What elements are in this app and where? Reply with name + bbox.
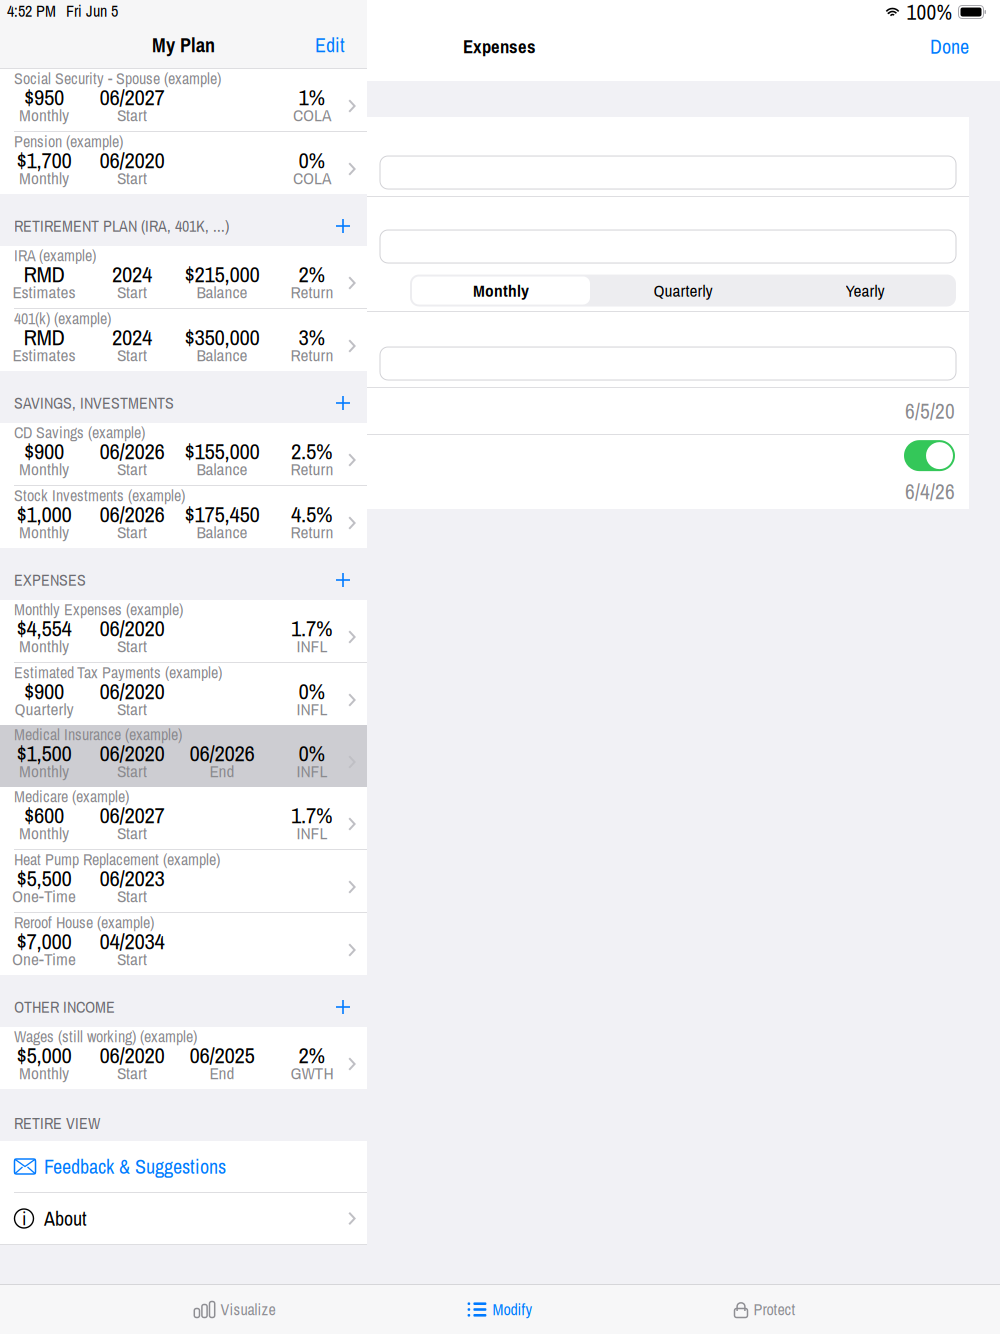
button[interactable]: Visualize — [102, 1285, 367, 1334]
staticText: Modify — [492, 1299, 532, 1320]
staticText: OTHER INCOME — [14, 996, 115, 1018]
button[interactable]: Add item to OTHER INCOME — [327, 994, 359, 1020]
staticText: Done — [930, 33, 969, 60]
staticText: Edit — [315, 31, 345, 58]
button[interactable]: Add item to EXPENSES — [327, 567, 359, 593]
staticText: One-Time — [12, 947, 76, 971]
staticText: Monthly — [19, 520, 69, 544]
button[interactable]: Stock Investments (example) — [0, 486, 367, 548]
staticText: $1,000 — [16, 499, 71, 529]
button[interactable]: Social Security - Spouse (example) — [0, 69, 367, 131]
staticText: INFL — [296, 697, 327, 721]
staticText: $5,500 — [16, 863, 71, 893]
button[interactable]: Done — [920, 24, 979, 69]
button[interactable]: Modify — [367, 1285, 632, 1334]
staticText: Monthly — [19, 103, 69, 127]
staticText: 06/2026 — [99, 436, 164, 466]
staticText: 2024 — [112, 322, 152, 352]
button[interactable]: Yearly — [774, 274, 956, 306]
staticText: COLA — [293, 166, 331, 190]
staticText: Reroof House (example) — [14, 912, 154, 933]
staticText: Quarterly — [653, 279, 712, 302]
staticText: Monthly — [473, 279, 529, 302]
staticText: 2% — [298, 1040, 325, 1070]
staticText: 3% — [298, 322, 325, 352]
staticText: $1,700 — [16, 145, 71, 175]
staticText: EXPENSES — [14, 569, 86, 591]
staticText: Fri Jun 5 — [66, 0, 118, 22]
staticText: i — [22, 1207, 26, 1230]
staticText: 1.7% — [291, 800, 333, 830]
staticText: Monthly — [19, 166, 69, 190]
staticText: 0% — [298, 145, 325, 175]
button[interactable]: i — [0, 1193, 367, 1244]
staticText: Visualize — [220, 1299, 275, 1320]
staticText: Return — [290, 343, 333, 367]
staticText: 06/2026 — [99, 499, 164, 529]
staticText: $7,000 — [16, 926, 71, 956]
button[interactable]: Estimated Tax Payments (example) — [0, 663, 367, 725]
staticText: 4.5% — [291, 499, 333, 529]
staticText: 0% — [298, 738, 325, 768]
staticText: Start — [117, 821, 147, 845]
staticText: Wages (still working) (example) — [14, 1026, 197, 1047]
staticText: Monthly — [19, 1061, 69, 1085]
button[interactable]: Pension (example) — [0, 132, 367, 194]
staticText: Estimates — [12, 343, 75, 367]
staticText: 0% — [298, 676, 325, 706]
staticText: COLA — [293, 103, 331, 127]
staticText: 06/2020 — [99, 145, 164, 175]
staticText: 4:52 PM — [7, 0, 56, 22]
staticText: Start — [117, 634, 147, 658]
button[interactable]: Monthly — [410, 274, 592, 306]
staticText: $175,450 — [184, 499, 259, 529]
staticText: Start — [117, 697, 147, 721]
button[interactable]: Medical Insurance (example) — [0, 725, 367, 787]
button[interactable]: Add item to RETIREMENT PLAN (IRA, 401K, … — [327, 213, 359, 239]
staticText: End — [209, 759, 234, 783]
button[interactable]: Add item to SAVINGS, INVESTMENTS — [327, 390, 359, 416]
button[interactable]: Heat Pump Replacement (example) — [0, 850, 367, 912]
staticText: 06/2023 — [99, 863, 164, 893]
button[interactable]: Quarterly — [592, 274, 774, 306]
button[interactable]: IRA (example) — [0, 246, 367, 308]
staticText: Start — [117, 520, 147, 544]
staticText: RMD — [23, 259, 64, 289]
staticText: 6/5/20 — [905, 397, 955, 425]
staticText: Yearly — [845, 279, 884, 302]
staticText: Start — [117, 166, 147, 190]
staticText: 1% — [298, 82, 325, 112]
button[interactable]: CD Savings (example) — [0, 423, 367, 485]
staticText: Start — [117, 457, 147, 481]
button[interactable]: Medicare (example) — [0, 787, 367, 849]
staticText: Heat Pump Replacement (example) — [14, 849, 220, 870]
staticText: 100% — [906, 0, 952, 26]
button[interactable]: Wages (still working) (example) — [0, 1027, 367, 1089]
staticText: 06/2025 — [189, 1040, 254, 1070]
staticText: Monthly Expenses (example) — [14, 599, 183, 620]
staticText: $155,000 — [184, 436, 259, 466]
button[interactable]: Edit — [307, 25, 353, 64]
staticText: Estimated Tax Payments (example) — [14, 662, 222, 683]
staticText: 06/2027 — [99, 800, 164, 830]
staticText: Protect — [753, 1299, 795, 1320]
staticText: Start — [117, 280, 147, 304]
staticText: Monthly — [19, 821, 69, 845]
staticText: Monthly — [19, 457, 69, 481]
staticText: INFL — [296, 634, 327, 658]
staticText: About — [44, 1205, 87, 1232]
button[interactable]: Toggle — [904, 434, 955, 477]
staticText: Monthly — [19, 759, 69, 783]
button[interactable]: Feedback & Suggestions — [0, 1141, 367, 1192]
staticText: $900 — [24, 436, 64, 466]
staticText: Monthly — [19, 634, 69, 658]
button[interactable]: 401(k) (example) — [0, 309, 367, 371]
staticText: Return — [290, 457, 333, 481]
staticText: 6/4/26 — [905, 477, 955, 506]
staticText: Expenses — [463, 34, 536, 59]
staticText: One-Time — [12, 884, 76, 908]
button[interactable]: Protect — [632, 1285, 897, 1334]
staticText: 1.7% — [291, 613, 333, 643]
button[interactable]: Reroof House (example) — [0, 913, 367, 975]
button[interactable]: Monthly Expenses (example) — [0, 600, 367, 662]
